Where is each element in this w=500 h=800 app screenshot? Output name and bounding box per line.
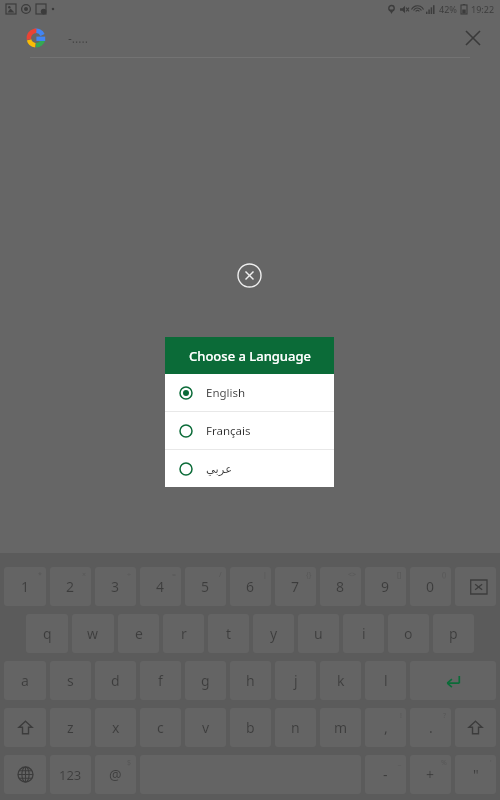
button[interactable]: 123 xyxy=(50,755,91,794)
staticText: c xyxy=(157,718,164,737)
button[interactable]: d xyxy=(95,661,136,700)
button[interactable]: <> xyxy=(320,567,361,606)
staticText: o xyxy=(404,624,413,643)
staticText: Français xyxy=(206,423,251,439)
button[interactable]: = xyxy=(140,567,181,606)
staticText: u xyxy=(314,624,323,643)
button[interactable]: Change language xyxy=(4,755,46,794)
staticText: 42% xyxy=(439,3,457,15)
button[interactable]: Backspace xyxy=(455,567,496,606)
button[interactable]: y xyxy=(253,614,294,653)
button[interactable]: Shift xyxy=(4,708,46,747)
staticText: 0 xyxy=(426,577,435,596)
button[interactable]: f xyxy=(140,661,181,700)
button[interactable]: e xyxy=(118,614,159,653)
staticText: e xyxy=(135,624,143,643)
staticText: m xyxy=(334,718,348,737)
button[interactable]: b xyxy=(230,708,271,747)
staticText: 2 xyxy=(66,577,75,596)
button[interactable]: () xyxy=(410,567,451,606)
button[interactable]: * xyxy=(4,567,46,606)
button[interactable]: o xyxy=(388,614,429,653)
staticText: , xyxy=(384,718,388,737)
button[interactable]: w xyxy=(72,614,114,653)
staticText: @ xyxy=(109,765,122,784)
staticText: n xyxy=(291,718,300,737)
button[interactable]: [] xyxy=(365,567,406,606)
button[interactable]: Shift xyxy=(455,708,496,747)
staticText: q xyxy=(43,624,52,643)
button[interactable]: | xyxy=(230,567,271,606)
button[interactable]: z xyxy=(50,708,91,747)
staticText: 8 xyxy=(336,577,345,596)
staticText: English xyxy=(206,385,246,401)
button[interactable]: x xyxy=(95,708,136,747)
staticText: g xyxy=(201,671,210,690)
button[interactable]: × xyxy=(50,567,91,606)
button[interactable]: / xyxy=(185,567,226,606)
button[interactable]: Close xyxy=(237,263,262,288)
staticText: 4 xyxy=(156,577,165,596)
button[interactable]: j xyxy=(275,661,316,700)
button[interactable]: m xyxy=(320,708,361,747)
staticText: [] xyxy=(397,570,402,580)
staticText: -..... xyxy=(68,30,88,46)
staticText: r xyxy=(181,624,187,643)
button[interactable]: s xyxy=(50,661,91,700)
staticText: . xyxy=(429,718,433,737)
staticText: 7 xyxy=(291,577,300,596)
staticText: j xyxy=(294,671,298,690)
staticText: 3 xyxy=(111,577,120,596)
button[interactable]: q xyxy=(26,614,68,653)
staticText: w xyxy=(87,624,99,643)
button[interactable]: g xyxy=(185,661,226,700)
staticText: 6 xyxy=(246,577,255,596)
button[interactable]: عربي xyxy=(165,450,334,487)
staticText: " xyxy=(473,765,479,784)
staticText: y xyxy=(270,624,278,643)
staticText: Choose a Language xyxy=(189,347,311,365)
button[interactable]: Clear search xyxy=(456,21,490,55)
staticText: v xyxy=(202,718,210,737)
staticText: f xyxy=(158,671,163,690)
button[interactable]: {} xyxy=(275,567,316,606)
button[interactable]: k xyxy=(320,661,361,700)
button[interactable]: ÷ xyxy=(95,567,136,606)
staticText: {} xyxy=(306,570,312,580)
button[interactable]: t xyxy=(208,614,249,653)
button[interactable]: v xyxy=(185,708,226,747)
button[interactable]: Français xyxy=(165,412,334,449)
button[interactable]: $ xyxy=(95,755,136,794)
button[interactable]: n xyxy=(275,708,316,747)
staticText: z xyxy=(67,718,74,737)
staticText: x xyxy=(112,718,120,737)
button[interactable]: u xyxy=(298,614,339,653)
button[interactable]: c xyxy=(140,708,181,747)
button[interactable]: a xyxy=(4,661,46,700)
staticText: 9 xyxy=(381,577,390,596)
staticText: () xyxy=(442,570,447,580)
button[interactable]: -..... xyxy=(0,20,500,56)
button[interactable]: English xyxy=(165,374,334,411)
button[interactable]: p xyxy=(433,614,474,653)
button[interactable]: Enter xyxy=(410,661,496,700)
button[interactable]: h xyxy=(230,661,271,700)
